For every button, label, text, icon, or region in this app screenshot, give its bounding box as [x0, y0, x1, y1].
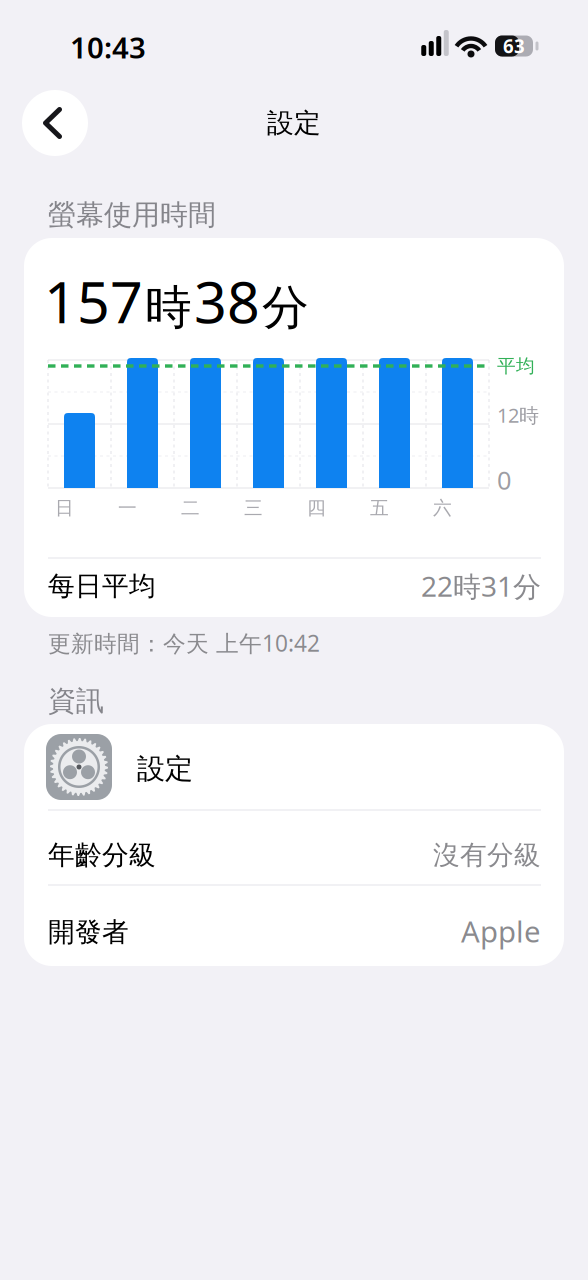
- staticText: 二: [181, 496, 200, 519]
- staticText: 年齡分級: [48, 839, 156, 871]
- staticText: 12時: [497, 402, 539, 428]
- staticText: 10:43: [70, 27, 146, 66]
- staticText: 22時31分: [421, 567, 541, 605]
- staticText: 螢幕使用時間: [48, 198, 216, 232]
- staticText: 38: [194, 263, 260, 339]
- button[interactable]: Back: [22, 90, 88, 156]
- staticText: 63: [503, 34, 525, 58]
- staticText: 設定: [267, 107, 321, 139]
- staticText: 更新時間：今天 上午10:42: [48, 628, 320, 658]
- staticText: 0: [497, 463, 511, 497]
- staticText: 六: [433, 496, 452, 519]
- staticText: 分: [262, 279, 309, 336]
- staticText: 四: [307, 496, 326, 519]
- staticText: 資訊: [48, 684, 104, 718]
- staticText: 日: [55, 496, 74, 519]
- staticText: 開發者: [48, 916, 129, 948]
- staticText: 每日平均: [48, 570, 156, 602]
- staticText: 三: [244, 496, 263, 519]
- staticText: 沒有分級: [433, 839, 541, 871]
- staticText: Apple: [461, 911, 541, 950]
- staticText: 平均: [497, 354, 535, 377]
- staticText: 設定: [137, 752, 193, 786]
- staticText: 一: [118, 496, 137, 519]
- staticText: 157: [44, 263, 143, 339]
- staticText: 五: [370, 496, 389, 519]
- staticText: 時: [145, 279, 192, 336]
